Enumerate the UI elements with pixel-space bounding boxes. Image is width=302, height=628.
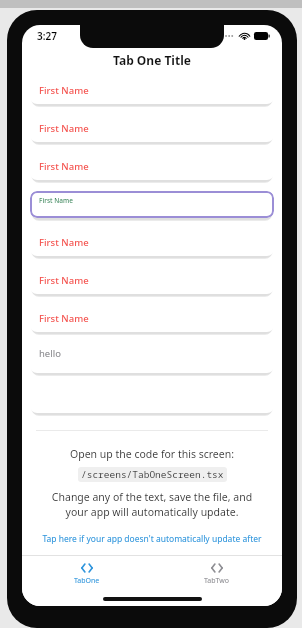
button[interactable]: First Name — [30, 115, 274, 142]
button[interactable]: TabTwo — [152, 556, 282, 592]
staticText: First Name — [39, 122, 89, 135]
staticText: Tab One Title — [113, 52, 191, 68]
button[interactable]: First Name — [30, 229, 274, 256]
button[interactable]: Tap here if your app doesn't automatical… — [30, 533, 274, 545]
button[interactable]: First Name — [30, 153, 274, 180]
staticText: 3:27 — [37, 29, 57, 43]
button[interactable]: First Name — [30, 305, 274, 332]
button[interactable]: First Name — [30, 77, 274, 104]
staticText: First Name — [39, 196, 73, 205]
button[interactable]: First Name — [30, 267, 274, 294]
staticText: TabOne — [74, 576, 100, 586]
button[interactable]: First Name — [30, 191, 274, 218]
staticText: TabTwo — [204, 576, 230, 586]
button[interactable]: TabOne — [22, 556, 152, 592]
staticText: First Name — [39, 274, 89, 287]
button[interactable]: hello — [30, 342, 274, 373]
staticText: First Name — [39, 236, 89, 249]
staticText: First Name — [39, 160, 89, 173]
staticText: First Name — [39, 84, 89, 97]
staticText: Open up the code for this screen: — [30, 447, 274, 461]
staticText: hello — [39, 347, 61, 360]
staticText: Change any of the text, save the file, a… — [30, 490, 274, 519]
staticText: /screens/TabOneScreen.tsx — [81, 468, 224, 481]
staticText: First Name — [39, 312, 89, 325]
staticText: Tap here if your app doesn't automatical… — [42, 533, 262, 545]
